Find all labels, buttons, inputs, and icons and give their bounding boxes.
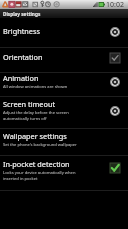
button[interactable]: Screen timeout <box>0 97 128 128</box>
staticText: Animation <box>3 73 39 83</box>
staticText: Display settings <box>3 11 41 17</box>
staticText: In-pocket detection <box>3 159 70 169</box>
staticText: All window animations are shown <box>3 84 68 90</box>
staticText: Locks your device automatically when ins… <box>3 170 76 182</box>
staticText: 10:02 <box>106 0 124 9</box>
button[interactable]: Brightness <box>0 18 128 47</box>
staticText: Set the phone's background wallpaper <box>3 142 77 148</box>
staticText: Screen timeout <box>3 99 56 109</box>
staticText: Brightness <box>3 26 40 36</box>
staticText: Wallpaper settings <box>3 131 67 141</box>
button[interactable]: In-pocket detection <box>0 156 128 190</box>
button[interactable]: Wallpaper settings <box>0 129 128 155</box>
staticText: Adjust the delay before the screen autom… <box>3 110 69 122</box>
staticText: Orientation <box>3 52 43 62</box>
button[interactable]: Animation <box>0 73 128 96</box>
button[interactable]: Orientation <box>0 48 128 72</box>
